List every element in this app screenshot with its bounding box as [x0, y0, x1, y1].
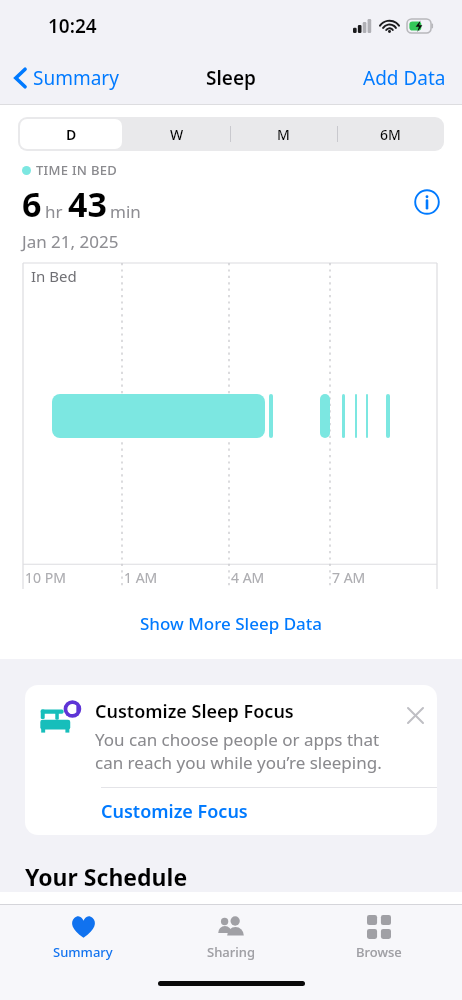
staticText: Customize Sleep Focus — [95, 699, 294, 724]
staticText: 7 AM — [332, 568, 366, 587]
button[interactable]: D — [18, 117, 124, 151]
staticText: Summary — [53, 943, 113, 961]
staticText: 6M — [380, 125, 401, 144]
staticText: In Bed — [31, 266, 77, 286]
staticText: min — [110, 200, 141, 223]
button[interactable]: Summary — [18, 905, 148, 971]
staticText: 10:24 — [48, 13, 97, 39]
staticText: W — [170, 125, 184, 144]
staticText: 10 PM — [25, 568, 66, 587]
button[interactable]: M — [230, 117, 337, 151]
staticText: 43 — [68, 181, 107, 227]
staticText: D — [66, 125, 77, 144]
staticText: TIME IN BED — [36, 161, 118, 179]
staticText: M — [277, 125, 290, 144]
staticText: 6 — [22, 181, 42, 227]
staticText: You can choose people or apps that — [95, 728, 380, 751]
staticText: can reach you while you’re sleeping. — [95, 751, 382, 774]
staticText: Customize Focus — [101, 799, 248, 824]
staticText: hr — [45, 200, 63, 223]
button[interactable]: Dismiss — [401, 701, 429, 729]
staticText: Sleep — [206, 65, 256, 91]
staticText: Jan 21, 2025 — [22, 230, 119, 253]
staticText: Add Data — [363, 65, 446, 91]
staticText: Sharing — [207, 943, 255, 961]
button[interactable]: 6M — [337, 117, 444, 151]
staticText: 1 AM — [124, 568, 158, 587]
button[interactable]: Sharing — [166, 905, 296, 971]
button[interactable]: Add Data — [357, 59, 452, 97]
staticText: Summary — [33, 65, 119, 91]
button[interactable]: Information — [412, 187, 442, 217]
staticText: Show More Sleep Data — [140, 612, 323, 635]
button[interactable]: Customize Focus — [25, 788, 437, 835]
button[interactable]: Browse — [314, 905, 444, 971]
button[interactable]: W — [124, 117, 230, 151]
staticText: Browse — [356, 943, 402, 961]
button[interactable]: Show More Sleep Data — [0, 603, 462, 643]
button[interactable]: Summary — [8, 59, 125, 97]
staticText: Your Schedule — [25, 861, 188, 892]
staticText: 4 AM — [231, 568, 265, 587]
